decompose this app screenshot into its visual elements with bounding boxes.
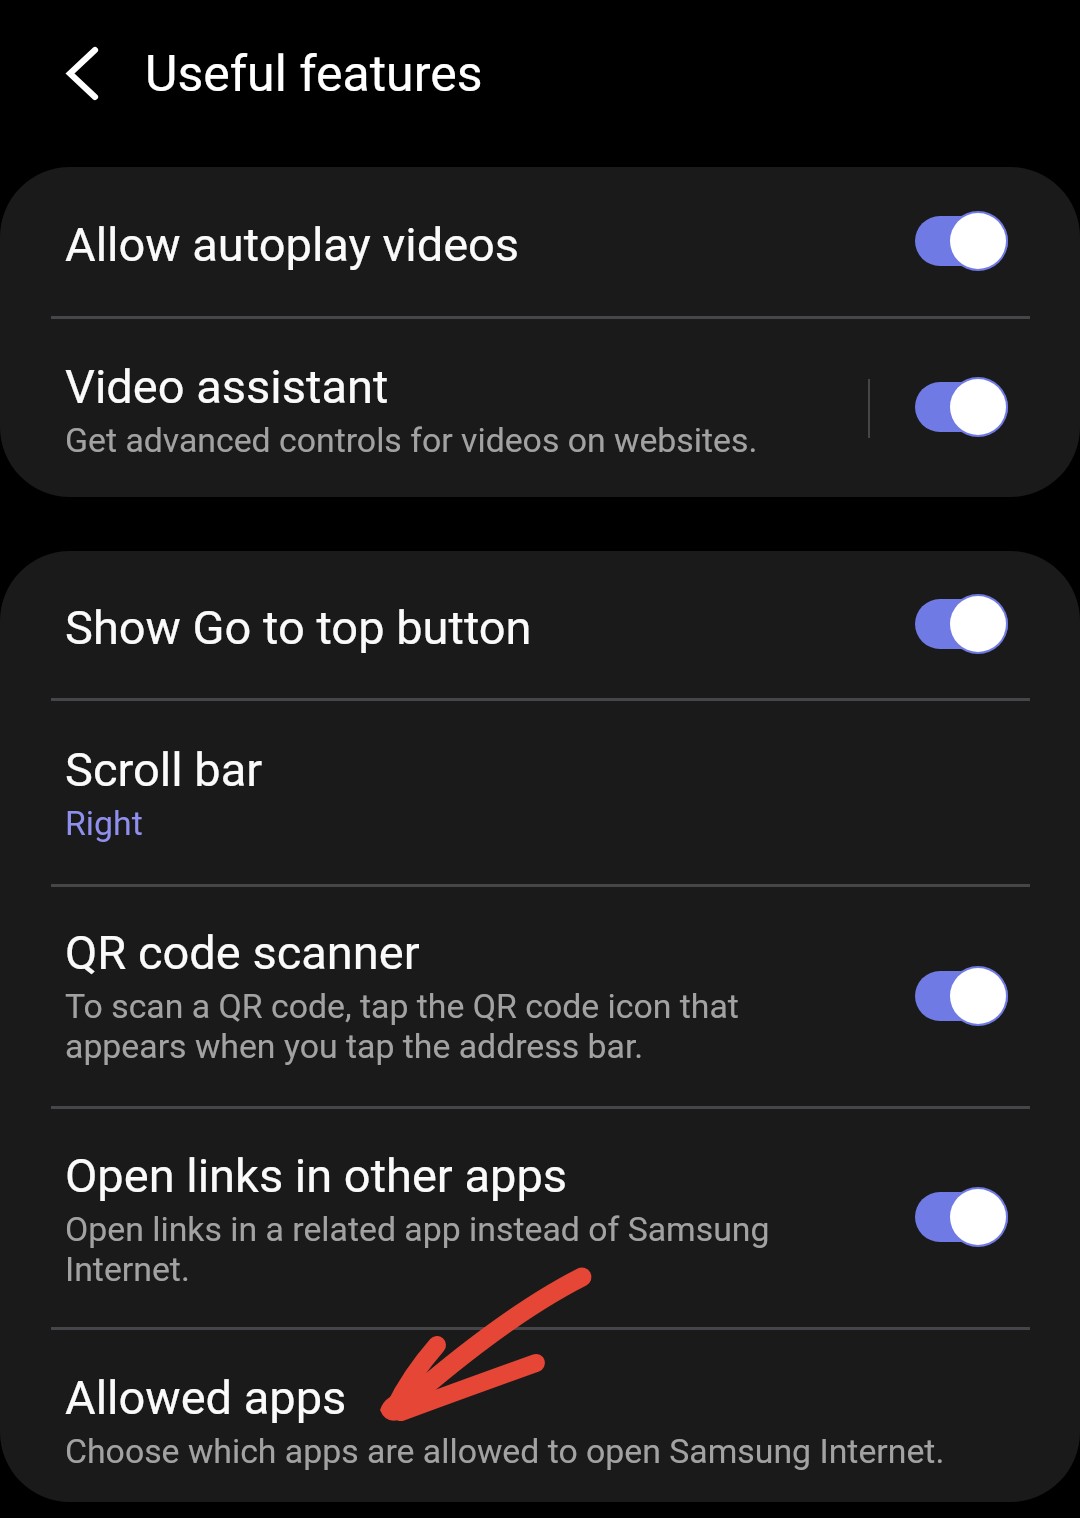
staticText: Open links in other apps [65,1148,568,1204]
staticText: To scan a QR code, tap the QR code icon … [65,986,830,1066]
staticText: Get advanced controls for videos on webs… [65,420,758,460]
staticText: QR code scanner [65,925,420,981]
staticText: Open links in a related app instead of S… [65,1209,830,1289]
button[interactable]: Open links in other apps [914,1186,1010,1248]
button[interactable]: Show Go to top button [914,593,1010,655]
button[interactable]: QR code scanner [0,887,1080,1106]
button[interactable]: Video assistant [0,319,1080,497]
button[interactable]: Scroll bar [0,701,1080,884]
staticText: Right [65,803,143,843]
button[interactable]: Allow autoplay videos [914,210,1010,272]
button[interactable]: Open links in other apps [0,1109,1080,1327]
button[interactable]: QR code scanner [914,965,1010,1027]
staticText: Scroll bar [65,742,263,798]
button[interactable]: Allowed apps [0,1330,1080,1502]
button[interactable]: Navigate up [30,21,134,125]
button[interactable]: Show Go to top button [0,551,1080,698]
staticText: Allowed apps [65,1370,347,1426]
staticText: Video assistant [65,359,389,415]
staticText: Allow autoplay videos [65,217,520,273]
staticText: Choose which apps are allowed to open Sa… [65,1431,945,1471]
button[interactable]: Video assistant [914,376,1010,438]
staticText: Show Go to top button [65,600,532,656]
staticText: Useful features [145,45,483,103]
button[interactable]: Allow autoplay videos [0,167,1080,316]
